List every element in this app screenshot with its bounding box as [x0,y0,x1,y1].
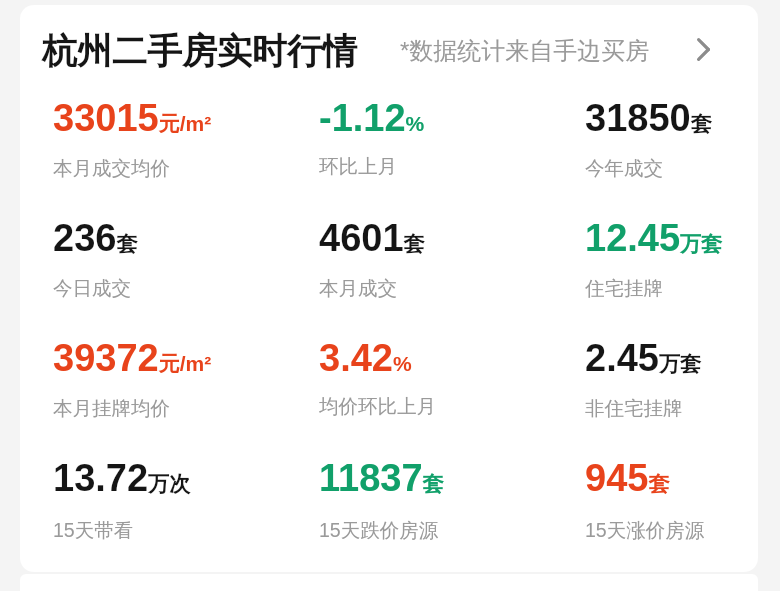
staticText: 均价环比上月 [319,394,436,420]
staticText: 2.45万套 [585,336,701,382]
staticText: 4601套 [319,216,425,262]
staticText: 15天跌价房源 [319,516,439,543]
staticText: 236套 [53,216,138,262]
staticText: 31850套 [585,96,712,142]
button[interactable]: 查看更多 [681,27,725,71]
button[interactable]: 杭州二手房实时行情 [20,5,758,93]
staticText: 11837套 [319,456,444,502]
staticText: 住宅挂牌 [585,276,663,302]
staticText: 13.72万次 [53,456,191,502]
staticText: 3.42% [319,336,412,380]
staticText: 今日成交 [53,276,131,302]
staticText: 今年成交 [585,156,663,182]
staticText: 环比上月 [319,154,397,180]
staticText: *数据统计来自手边买房 [400,35,650,67]
staticText: 本月成交均价 [53,156,170,182]
staticText: -1.12% [319,96,425,140]
staticText: 杭州二手房实时行情 [42,30,357,74]
staticText: 33015元/m² [53,96,212,142]
staticText: 15天涨价房源 [585,516,705,543]
staticText: 12.45万套 [585,216,723,262]
staticText: 本月挂牌均价 [53,396,170,422]
staticText: 本月成交 [319,276,397,302]
staticText: 39372元/m² [53,336,212,382]
staticText: 945套 [585,456,670,502]
staticText: 15天带看 [53,516,134,543]
staticText: 非住宅挂牌 [585,396,683,422]
